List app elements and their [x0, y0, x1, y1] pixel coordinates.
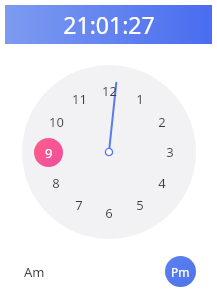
staticText: 1 — [136, 90, 144, 108]
staticText: 10 — [49, 113, 64, 131]
button[interactable]: 6 — [96, 200, 122, 226]
staticText: 4 — [158, 174, 166, 192]
staticText: 9 — [45, 144, 53, 162]
other: Analog clock, 9 selected — [22, 65, 196, 239]
button[interactable]: 9 — [34, 138, 63, 167]
button[interactable]: Pm — [165, 256, 196, 287]
button[interactable]: 7 — [66, 192, 92, 218]
staticText: 6 — [105, 204, 113, 222]
button[interactable]: Am — [18, 259, 51, 285]
button[interactable]: 4 — [149, 170, 175, 196]
staticText: 5 — [136, 196, 144, 214]
button[interactable]: 3 — [157, 139, 183, 165]
button[interactable]: 2 — [149, 109, 175, 135]
staticText: 12 — [102, 82, 117, 100]
staticText: 2 — [158, 113, 166, 131]
staticText: 21:01:27 — [63, 9, 155, 40]
button[interactable]: 11 — [66, 86, 92, 112]
button[interactable]: 21:01:27 — [5, 5, 212, 44]
staticText: Pm — [171, 264, 190, 280]
staticText: Am — [24, 263, 45, 281]
button[interactable]: 10 — [43, 109, 69, 135]
staticText: 11 — [72, 90, 87, 108]
button[interactable]: 8 — [43, 170, 69, 196]
button[interactable]: 1 — [127, 86, 153, 112]
button[interactable]: 5 — [127, 192, 153, 218]
button[interactable]: 12 — [96, 78, 122, 104]
staticText: 3 — [166, 143, 174, 161]
staticText: 7 — [75, 196, 83, 214]
staticText: 8 — [52, 174, 60, 192]
